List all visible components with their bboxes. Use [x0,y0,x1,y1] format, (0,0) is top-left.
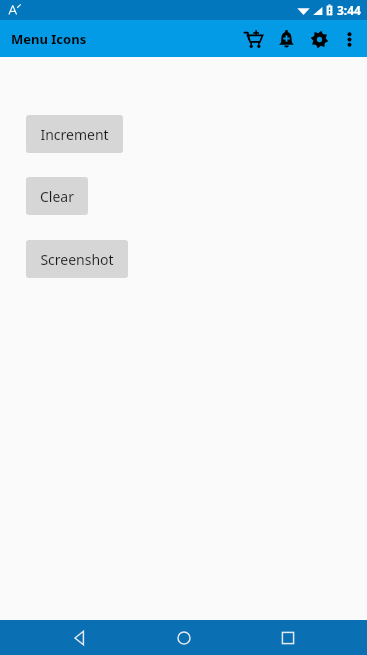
staticText: Clear [40,187,74,206]
button[interactable]: Recent apps [262,620,314,655]
staticText: Increment [40,125,109,144]
button[interactable]: More options [335,22,363,56]
button[interactable]: Clear [26,177,88,215]
button[interactable]: Screenshot [26,240,128,278]
staticText: Menu Icons [11,30,87,48]
button[interactable]: Home [158,620,210,655]
button[interactable]: Increment [26,115,123,153]
button[interactable]: Add notification [272,22,300,56]
button[interactable]: Back [53,620,105,655]
staticText: Screenshot [40,250,114,269]
button[interactable]: Settings [305,22,333,56]
staticText: 3:44 [337,2,361,18]
button[interactable]: Add to cart [239,22,267,56]
